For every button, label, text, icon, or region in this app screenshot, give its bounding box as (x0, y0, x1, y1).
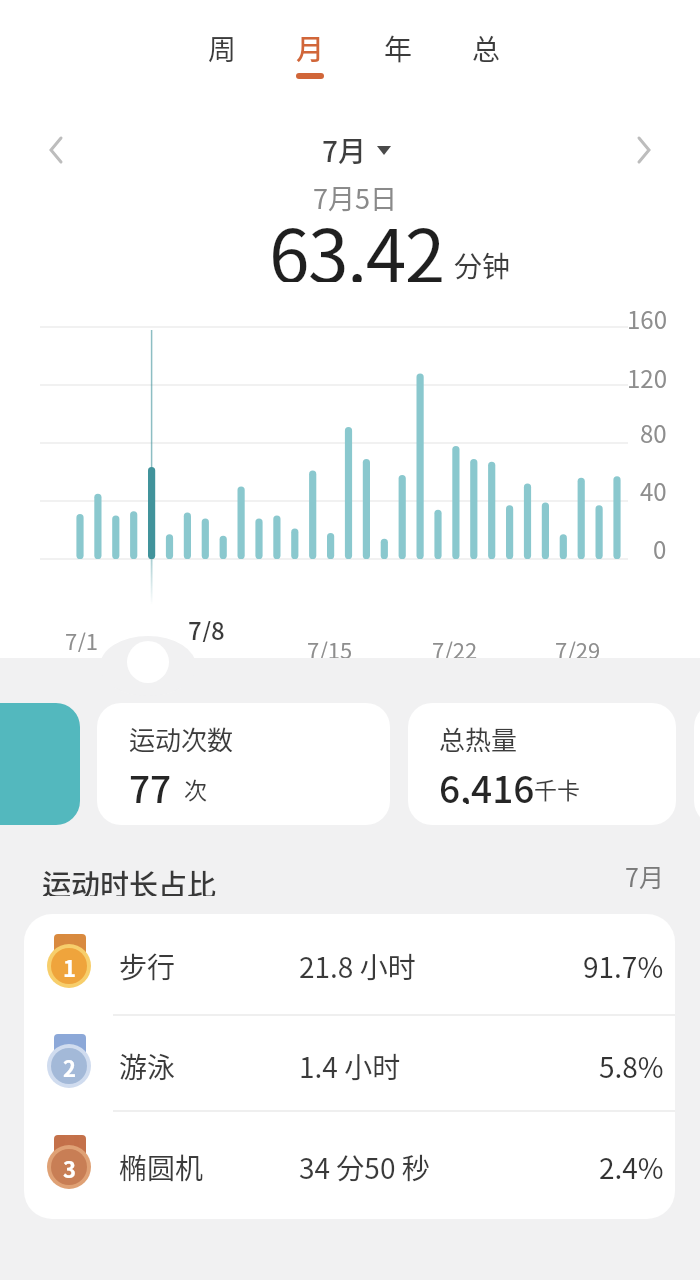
button[interactable]: 7月 (304, 128, 404, 172)
staticText: 月 (296, 28, 325, 69)
button[interactable]: 月 (280, 26, 340, 70)
staticText: 0 (653, 531, 667, 559)
staticText: 7月5日 (313, 178, 397, 216)
button[interactable] (24, 1115, 675, 1215)
staticText: 7/22 (432, 633, 478, 661)
staticText: 40 (640, 473, 667, 501)
staticText: 91.7% (583, 946, 664, 982)
button[interactable] (24, 1014, 675, 1114)
staticText: 总热量 (439, 720, 518, 752)
staticText: 3 (63, 1152, 76, 1182)
staticText: 120 (627, 360, 667, 388)
staticText: 7/29 (555, 633, 601, 661)
staticText: 7/8 (188, 612, 225, 642)
staticText: 总 (472, 28, 501, 69)
button[interactable]: 周 (192, 26, 252, 70)
button[interactable] (408, 703, 676, 825)
staticText: 21.8 小时 (299, 946, 416, 982)
staticText: 80 (640, 415, 667, 443)
button[interactable] (628, 132, 660, 168)
staticText: 1.4 小时 (299, 1046, 401, 1082)
staticText: 6,416 (439, 760, 535, 804)
staticText: 运动次数 (129, 720, 234, 752)
staticText: 次 (184, 772, 207, 804)
staticText: 7/1 (65, 624, 99, 652)
staticText: 周 (208, 28, 237, 69)
staticText: 7月 (625, 858, 664, 892)
button[interactable] (97, 703, 390, 825)
staticText: 椭圆机 (119, 1147, 204, 1183)
button[interactable] (24, 914, 675, 1014)
staticText: 千卡 (534, 772, 580, 804)
staticText: 34 分50 秒 (299, 1147, 430, 1183)
staticText: 160 (627, 301, 667, 329)
staticText: 1 (63, 951, 76, 981)
button[interactable] (0, 703, 80, 825)
staticText: 游泳 (119, 1046, 176, 1082)
staticText: 运动时长占比 (42, 862, 217, 896)
staticText: 7/15 (307, 633, 353, 661)
staticText: 年 (384, 28, 413, 69)
button[interactable] (40, 132, 72, 168)
staticText: 步行 (119, 946, 176, 982)
button[interactable]: 年 (368, 26, 428, 70)
staticText: 5.8% (599, 1046, 664, 1082)
staticText: 77 (129, 760, 172, 804)
staticText: 7月 (322, 130, 366, 171)
staticText: 分钟 (454, 245, 511, 281)
staticText: 2 (63, 1051, 76, 1081)
button[interactable]: 总 (456, 26, 516, 70)
staticText: 2.4% (599, 1147, 664, 1183)
staticText: 63.42 (269, 198, 444, 282)
